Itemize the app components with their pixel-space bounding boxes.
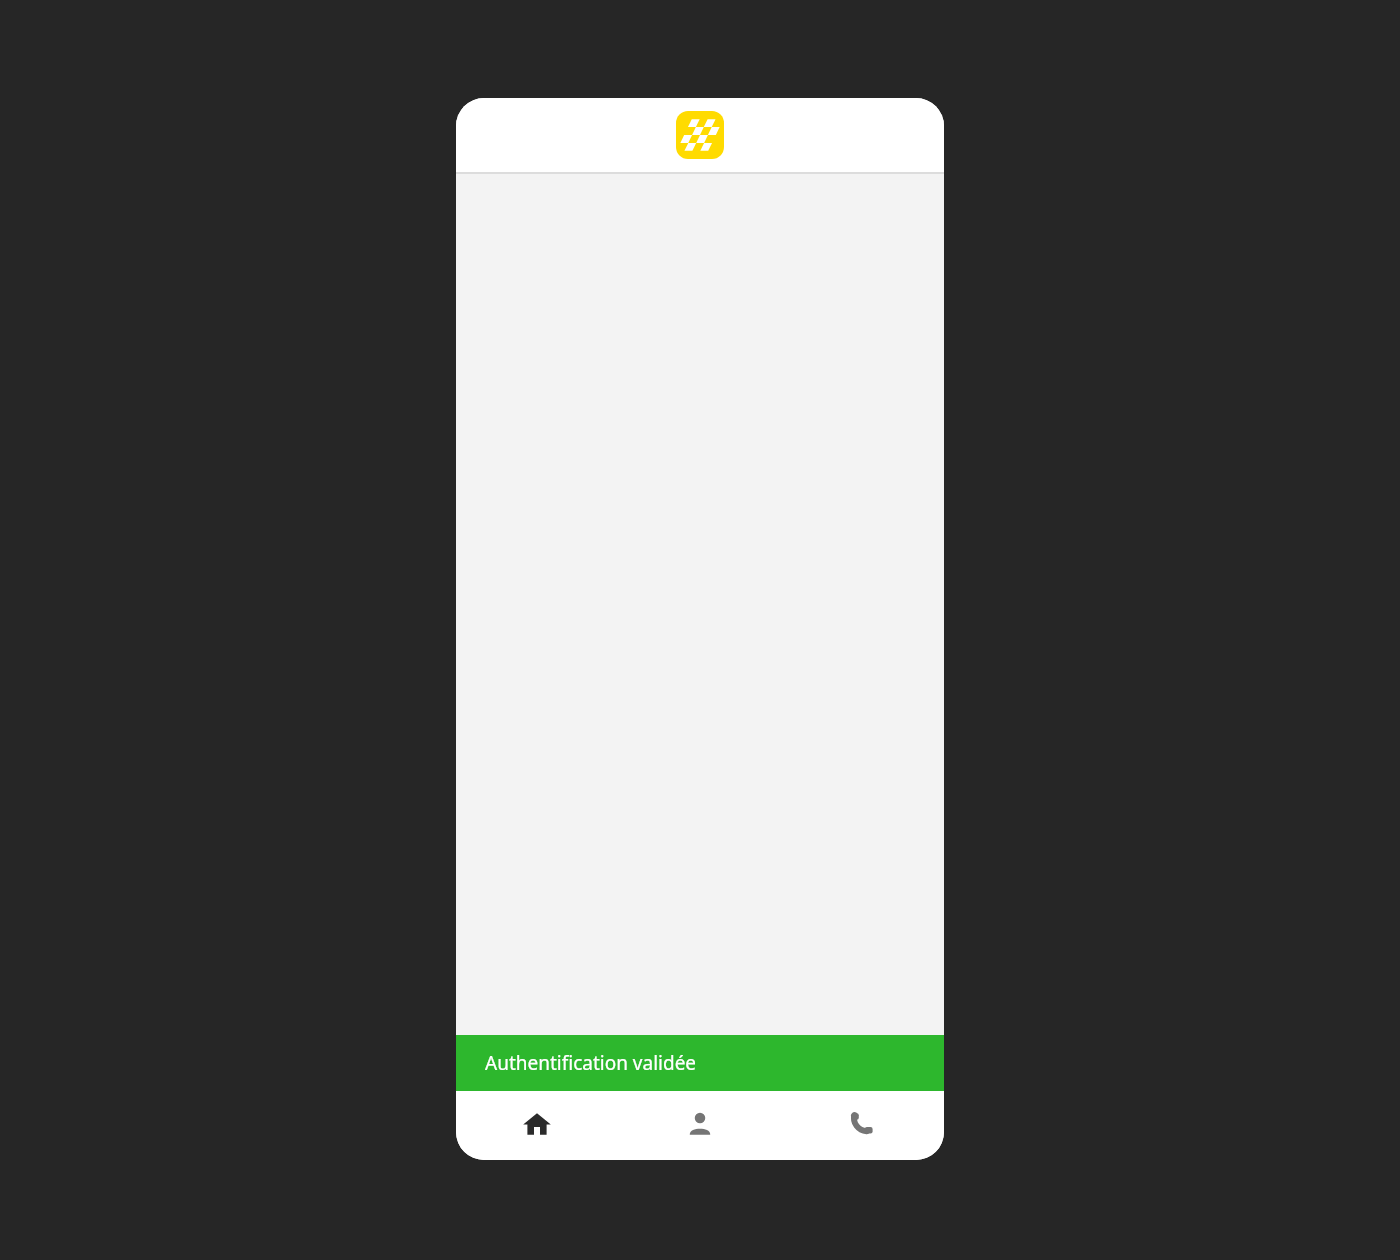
button[interactable]: Authentification validée <box>456 1035 944 1091</box>
button[interactable]: Call <box>781 1091 944 1160</box>
button[interactable]: Taxi app logo <box>676 111 724 159</box>
button[interactable]: Home <box>456 1091 618 1160</box>
button[interactable]: Profile <box>618 1091 781 1160</box>
staticText: Authentification validée <box>485 1050 697 1076</box>
